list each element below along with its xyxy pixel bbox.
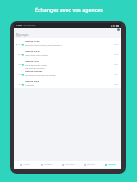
staticText: 14:05 [16, 24, 22, 27]
staticText: 09:12 [114, 53, 119, 56]
staticText: 09:12 [18, 53, 23, 56]
staticText: 12/04 [114, 83, 120, 86]
staticText: Hier [114, 63, 118, 66]
button[interactable]: Profil [117, 28, 120, 31]
staticText: Messages [16, 33, 29, 37]
staticText: À bientôt [25, 84, 34, 87]
button[interactable]: Agences [100, 161, 121, 168]
button[interactable]: Lundi [14, 68, 121, 78]
button[interactable]: Virements [58, 161, 79, 168]
staticText: Hier [18, 63, 22, 66]
staticText: Documents transmis au service [25, 74, 56, 77]
staticText: Agence Nice [25, 80, 40, 83]
staticText: 10:24 [114, 43, 119, 46]
staticText: Tous [16, 35, 21, 38]
staticText: Agence Lyon [25, 40, 40, 43]
staticText: Lundi [18, 73, 23, 76]
button[interactable]: Accueil [14, 161, 36, 168]
staticText: 10:24 [18, 43, 23, 46]
staticText: Échangez avec vos agences [35, 6, 103, 13]
button[interactable]: Hier [14, 58, 121, 68]
staticText: Ma Banque [23, 24, 36, 27]
staticText: Accueil [23, 163, 30, 166]
staticText: Agence Paris [25, 50, 40, 53]
button[interactable]: 12/04 [14, 78, 121, 88]
button[interactable]: 09:12 [14, 48, 121, 58]
staticText: Épargne [87, 163, 95, 166]
staticText: Bonjour Mme Durand, votre dossier a [25, 44, 63, 47]
button[interactable]: Comptes [36, 161, 58, 168]
staticText: Merci pour votre retour [25, 54, 49, 57]
button[interactable]: 10:24 [14, 38, 121, 48]
staticText: Lun [114, 73, 118, 76]
staticText: Agence Lille [25, 60, 39, 63]
staticText: Agence Nantes [25, 70, 43, 73]
staticText: 12/04 [18, 83, 24, 86]
staticText: été prise en compte. [25, 67, 46, 70]
staticText: Virements [65, 163, 75, 166]
staticText: Comptes [44, 163, 53, 166]
staticText: Votre demande a bien [25, 64, 47, 67]
button[interactable]: Épargne [79, 161, 100, 168]
staticText: Agences [108, 163, 116, 166]
